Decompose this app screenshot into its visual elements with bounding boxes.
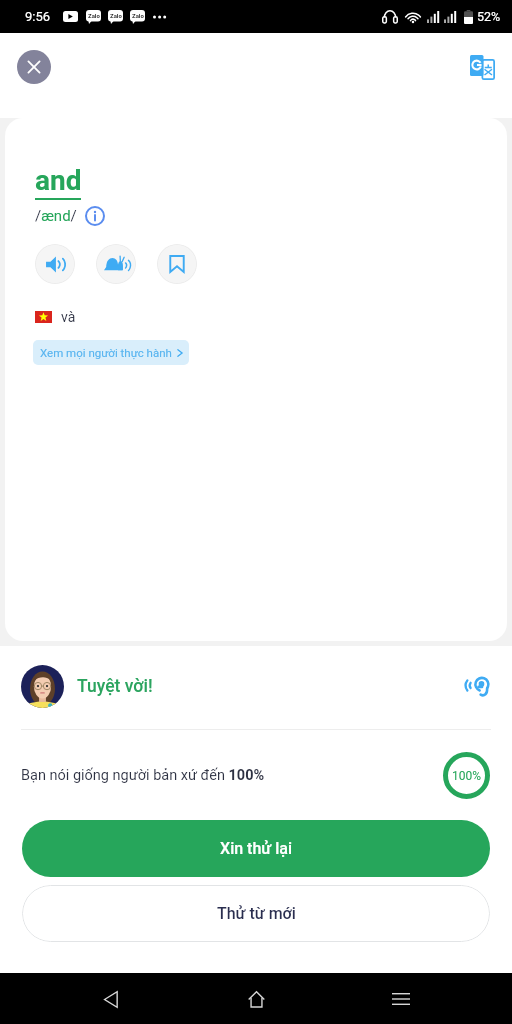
staticText: Bạn nói giống người bản xứ đến 100% xyxy=(21,767,265,784)
staticText: Xem mọi người thực hành xyxy=(40,346,172,359)
staticText: 100% xyxy=(452,769,482,783)
button[interactable]: Xin thử lại xyxy=(22,820,490,877)
button[interactable]: Home xyxy=(234,977,278,1021)
button[interactable]: Xem mọi người thực hành xyxy=(33,340,189,365)
staticText: và xyxy=(61,309,76,325)
button[interactable]: Play audio xyxy=(35,244,75,284)
staticText: Zalo xyxy=(110,12,122,19)
staticText: /ænd/ xyxy=(35,207,77,225)
staticText: 52% xyxy=(477,9,501,24)
staticText: Xin thử lại xyxy=(220,839,293,858)
button[interactable]: Recent apps xyxy=(379,977,423,1021)
staticText: 9:56 xyxy=(25,9,51,24)
button[interactable]: Info xyxy=(85,206,105,226)
button[interactable]: Bookmark xyxy=(157,244,197,284)
button[interactable]: Thử từ mới xyxy=(22,885,490,942)
button[interactable]: Back xyxy=(89,977,133,1021)
button[interactable]: Play slow audio xyxy=(96,244,136,284)
staticText: and xyxy=(35,164,82,197)
button[interactable]: Listen xyxy=(461,671,491,701)
staticText: Zalo xyxy=(88,12,100,19)
button[interactable]: Close xyxy=(17,50,51,84)
button[interactable]: Translate xyxy=(470,55,495,80)
staticText: Tuyệt vời! xyxy=(77,676,153,697)
staticText: Thử từ mới xyxy=(217,904,296,923)
staticText: Zalo xyxy=(132,12,144,19)
